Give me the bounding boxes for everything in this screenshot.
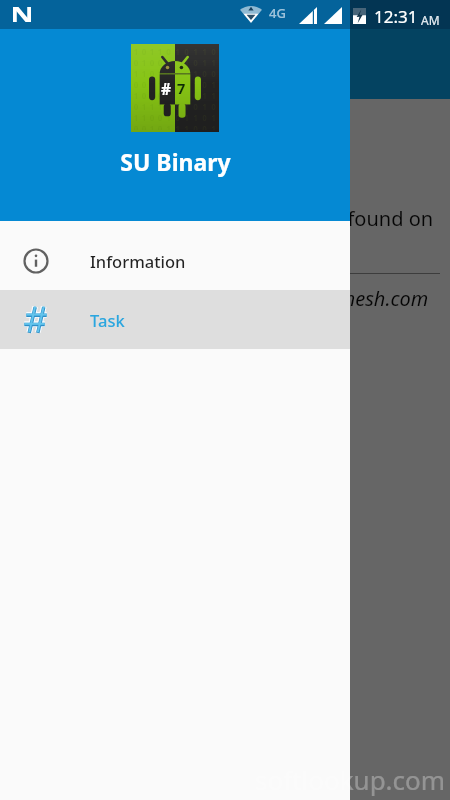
button[interactable]: Task	[0, 290, 350, 349]
staticText: SU Binary	[120, 146, 231, 177]
staticText: 1	[191, 79, 200, 90]
staticText: 1	[182, 101, 191, 112]
staticText: 0	[156, 112, 164, 123]
staticText: softlookup.com	[255, 762, 446, 797]
staticText: 0	[200, 79, 209, 90]
staticText: 1	[182, 68, 191, 79]
staticText: #	[161, 78, 172, 99]
staticText: 1	[173, 57, 182, 68]
staticText: 0	[182, 46, 191, 57]
staticText: AM	[421, 12, 440, 28]
staticText: 0	[156, 57, 164, 68]
staticText: 7	[177, 78, 186, 98]
staticText: 1	[200, 90, 209, 101]
other: Android N	[13, 7, 31, 22]
staticText: Task	[90, 309, 125, 331]
staticText: 4G	[269, 4, 286, 22]
staticText: 0	[173, 79, 182, 90]
staticText: 0	[182, 79, 191, 90]
staticText: 0	[191, 90, 200, 101]
staticText: 0	[173, 112, 182, 123]
staticText: 1	[148, 79, 156, 90]
staticText: 1	[173, 123, 182, 130]
staticText: Information	[90, 250, 186, 272]
staticText: 1	[156, 101, 164, 112]
staticText: 1	[182, 57, 191, 68]
staticText: 0	[200, 68, 209, 79]
button[interactable]: Information	[0, 231, 350, 290]
staticText: 1	[191, 68, 200, 79]
staticText: 1	[164, 79, 173, 90]
other: Mobile signal	[324, 7, 342, 24]
other: Mobile signal	[299, 7, 317, 24]
staticText: 0	[173, 68, 182, 79]
staticText: 1	[173, 46, 182, 57]
staticText: 0	[164, 68, 173, 79]
staticText: 1	[164, 90, 173, 101]
staticText: 0	[156, 90, 164, 101]
staticText: 1	[148, 90, 156, 101]
staticText: 1	[156, 79, 164, 90]
staticText: 1	[156, 46, 164, 57]
staticText: 1	[164, 57, 173, 68]
other: Battery charging	[353, 8, 366, 24]
staticText: 1	[164, 112, 173, 123]
staticText: 1	[182, 112, 191, 123]
staticText: 0	[173, 101, 182, 112]
staticText: 0	[182, 90, 191, 101]
staticText: Superuser binary not found on	[144, 205, 434, 232]
other: Wi-Fi	[240, 6, 262, 23]
staticText: www.androidramesh.com	[201, 285, 429, 312]
staticText: 12:31	[374, 5, 418, 28]
staticText: 0	[164, 101, 173, 112]
staticText: 1	[156, 68, 164, 79]
staticText: 0	[148, 68, 156, 79]
staticText: 1	[173, 90, 182, 101]
